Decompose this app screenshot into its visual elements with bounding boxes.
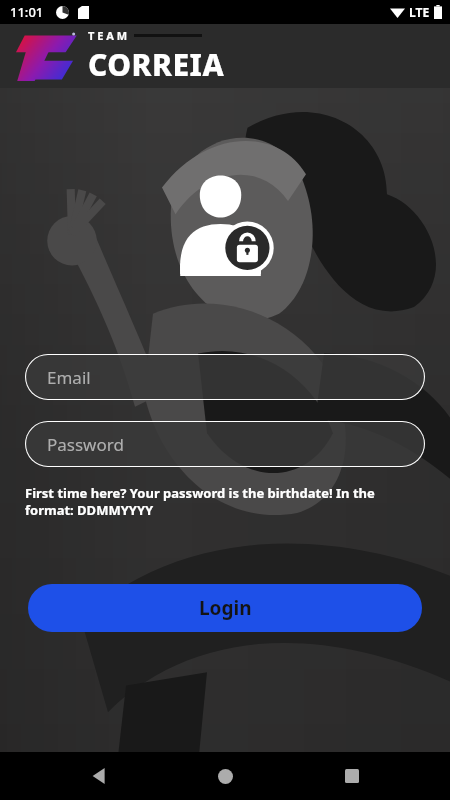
- staticText: LTE: [409, 4, 430, 20]
- staticText: CORREIA: [88, 44, 225, 85]
- button[interactable]: Email: [25, 354, 425, 400]
- staticText: Login: [199, 595, 252, 621]
- staticText: 11:01: [10, 3, 44, 21]
- button[interactable]: Login: [28, 584, 422, 632]
- staticText: First time here? Your password is the bi…: [25, 484, 426, 519]
- button[interactable]: Recent apps: [324, 752, 380, 800]
- button[interactable]: Home: [197, 752, 253, 800]
- button[interactable]: Back: [71, 752, 127, 800]
- staticText: T E A M: [88, 28, 128, 43]
- other: Secure login: [169, 172, 281, 276]
- button[interactable]: Password: [25, 421, 425, 467]
- staticText: Email: [47, 366, 91, 389]
- staticText: Password: [47, 433, 124, 456]
